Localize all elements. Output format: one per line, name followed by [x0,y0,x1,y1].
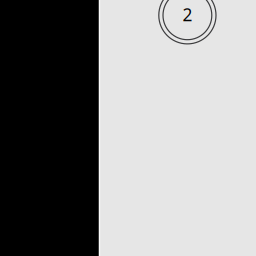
button[interactable]: Step 2 [0,0,256,256]
staticText: 2 [182,3,192,26]
